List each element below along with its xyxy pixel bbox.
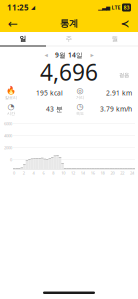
staticText: 월 [111,35,118,43]
staticText: 14 [81,170,85,176]
button[interactable]: Back [3,15,23,32]
staticText: 0 [13,170,15,176]
button[interactable]: Share [115,15,135,32]
staticText: 2 [23,170,25,176]
staticText: 10 [61,170,65,176]
staticText: 속도 [76,111,84,116]
staticText: 24 [130,170,134,176]
staticText: ≺ [120,17,129,29]
staticText: LTE [111,4,120,11]
staticText: ← [8,17,18,30]
staticText: ◷ [76,102,83,111]
staticText: 16 [91,170,95,176]
button[interactable]: 월 [92,32,138,45]
staticText: 시간 [7,111,15,116]
button[interactable]: Previous day [42,50,50,60]
staticText: 20 [110,170,114,176]
staticText: 12 [71,170,75,176]
staticText: 22 [120,170,124,176]
staticText: 6 [42,170,44,176]
staticText: 8 [52,170,54,176]
button[interactable]: 주 [46,32,92,45]
staticText: 3.79 km/h [100,105,132,113]
staticText: 18 [100,170,104,176]
staticText: 83 [123,4,129,11]
staticText: 2.91 km [106,89,132,97]
staticText: 6000 [4,121,12,126]
staticText: ▸ [90,51,93,59]
staticText: 4000 [4,133,12,138]
staticText: ◎ [76,86,83,95]
staticText: 4 [33,170,35,176]
staticText: 거리 [76,95,84,100]
staticText: ◢ [29,4,35,11]
staticText: 칼로리 [5,95,17,100]
staticText: 일 [19,35,26,43]
staticText: 2000 [4,145,12,150]
staticText: 0 [10,157,12,162]
staticText: 43 분 [46,105,63,113]
staticText: 9월 14일 [55,51,83,59]
staticText: 4,696 [40,57,98,87]
button[interactable]: 일 [0,32,46,45]
staticText: 11:25 [7,2,29,13]
button[interactable]: Next day [88,50,96,60]
staticText: 걸음 [119,72,129,78]
staticText: 주 [65,35,72,43]
staticText: ◂ [44,51,47,59]
staticText: 195 kcal [36,89,63,97]
staticText: 🔥 [6,86,16,95]
staticText: ◔ [7,102,14,111]
staticText: ▁▃▅ [98,4,110,11]
staticText: 통계 [60,18,78,29]
